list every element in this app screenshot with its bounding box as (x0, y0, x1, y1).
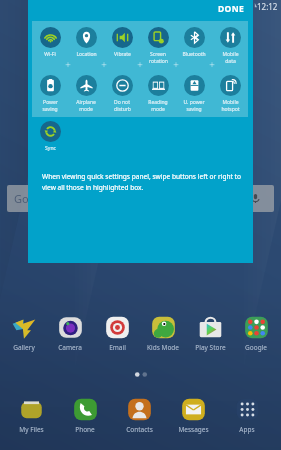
staticText: Phone (75, 425, 95, 434)
button[interactable]: Location (68, 27, 104, 58)
button[interactable]: Sync (32, 121, 68, 152)
button[interactable]: DONE (216, 2, 247, 16)
staticText: Location (76, 51, 97, 58)
staticText: Airplane (76, 99, 96, 106)
button[interactable]: Play Store (187, 314, 233, 352)
button[interactable]: Airplane (68, 75, 104, 113)
staticText: disturb (114, 106, 131, 113)
button[interactable]: Messages (170, 396, 216, 434)
staticText: data (225, 58, 236, 65)
staticText: DONE (218, 3, 245, 15)
staticText: U. power (183, 99, 205, 106)
staticText: Screen (150, 51, 166, 58)
staticText: mode (151, 106, 165, 113)
button[interactable]: Kids Mode (140, 314, 186, 352)
button[interactable]: U. power (176, 75, 212, 113)
staticText: My Files (19, 425, 44, 434)
staticText: Bluetooth (182, 51, 206, 58)
staticText: Wi-Fi (44, 51, 56, 58)
staticText: Vibrate (114, 51, 131, 58)
staticText: Go (14, 191, 29, 206)
staticText: Contacts (126, 425, 153, 434)
staticText: hotspot (221, 106, 240, 113)
staticText: Mobile (222, 99, 239, 106)
staticText: Play Store (195, 343, 226, 352)
button[interactable]: Mobile (212, 27, 248, 65)
staticText: saving (42, 106, 58, 113)
staticText: Reading (148, 99, 168, 106)
button[interactable]: Email (94, 314, 140, 352)
staticText: Gallery (13, 343, 35, 352)
button[interactable]: Vibrate (104, 27, 140, 58)
staticText: Camera (58, 343, 82, 352)
staticText: Kids Mode (147, 343, 179, 352)
button[interactable]: Contacts (116, 396, 162, 434)
button[interactable]: Do not (104, 75, 140, 113)
button[interactable]: My Files (8, 396, 54, 434)
button[interactable]: Wi-Fi (32, 27, 68, 58)
staticText: rotation (149, 58, 168, 65)
staticText: Power (43, 99, 58, 106)
staticText: Mobile (222, 51, 239, 58)
button[interactable]: Screen (140, 27, 176, 65)
button[interactable]: Mobile (212, 75, 248, 113)
button[interactable]: Gallery (1, 314, 47, 352)
button[interactable]: Phone (62, 396, 108, 434)
staticText: Google (245, 343, 267, 352)
staticText: Email (109, 343, 126, 352)
staticText: saving (186, 106, 202, 113)
staticText: Do not (114, 99, 130, 106)
staticText: Messages (178, 425, 209, 434)
staticText: Sync (45, 145, 56, 152)
other: Voice search (251, 194, 260, 203)
button[interactable]: Reading (140, 75, 176, 113)
button[interactable]: Apps (224, 396, 270, 434)
button[interactable]: Camera (47, 314, 93, 352)
staticText: Apps (239, 425, 255, 434)
button[interactable]: Go (7, 185, 274, 212)
staticText: mode (79, 106, 93, 113)
staticText: 12:12 (257, 1, 278, 12)
button[interactable]: Google (233, 314, 279, 352)
staticText: When viewing quick settings panel, swipe… (42, 172, 243, 192)
button[interactable]: Power (32, 75, 68, 113)
button[interactable]: Bluetooth (176, 27, 212, 58)
